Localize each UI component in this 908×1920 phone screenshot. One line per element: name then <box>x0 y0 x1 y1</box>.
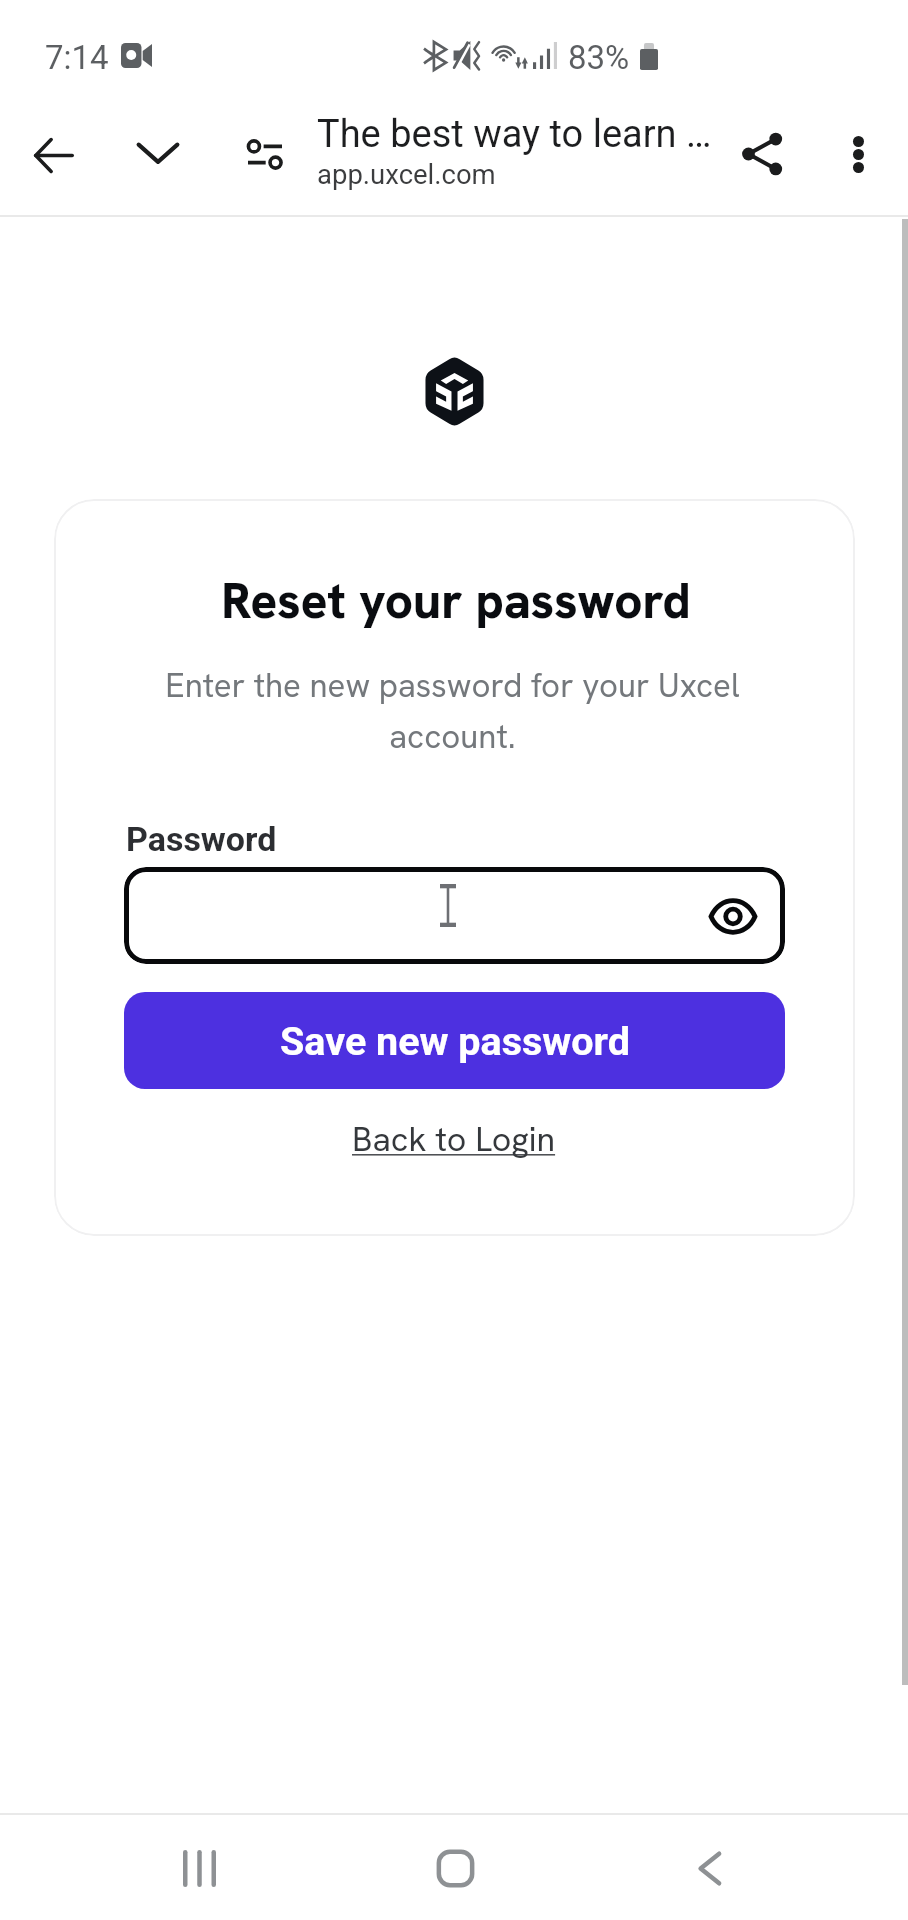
button[interactable]: Back to Login <box>342 1109 566 1169</box>
staticText: app.uxcel.com <box>317 158 496 190</box>
staticText: Reset your password <box>221 568 691 632</box>
button[interactable]: Collapse <box>110 105 206 201</box>
button[interactable]: Show password <box>703 886 763 946</box>
button[interactable]: Page info <box>222 111 308 197</box>
button[interactable]: Back <box>649 1816 769 1920</box>
button[interactable]: Save new password <box>124 992 785 1089</box>
button[interactable]: Show password <box>124 867 785 964</box>
staticText: The best way to learn … <box>317 112 712 157</box>
staticText: Enter the new password for your Uxcel ac… <box>123 664 782 758</box>
staticText: 83% <box>568 38 630 77</box>
staticText: 7:14 <box>45 38 109 77</box>
button[interactable]: Share <box>715 106 811 202</box>
staticText: Save new password <box>280 1018 630 1064</box>
staticText: Password <box>126 819 277 859</box>
button[interactable]: More options <box>810 106 906 202</box>
button[interactable]: Home <box>395 1816 515 1920</box>
button[interactable]: Recent apps <box>139 1816 259 1920</box>
staticText: Back to Login <box>352 1117 556 1161</box>
button[interactable]: Back <box>5 107 101 203</box>
